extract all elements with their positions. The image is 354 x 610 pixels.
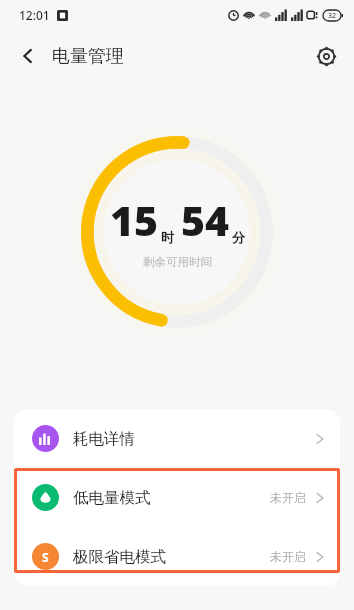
button[interactable]: Settings	[306, 36, 346, 76]
button[interactable]: 耗电详情	[14, 409, 340, 468]
staticText: 未开启	[270, 549, 306, 564]
staticText: 剩余可用时间	[143, 255, 212, 269]
staticText: S	[42, 549, 49, 565]
staticText: 54	[181, 192, 230, 248]
staticText: 分	[232, 229, 245, 245]
button[interactable]: 低电量模式	[14, 468, 340, 527]
staticText: 15	[110, 192, 159, 248]
staticText: 32	[328, 11, 337, 21]
staticText: 12:01	[19, 7, 50, 23]
staticText: 耗电详情	[73, 429, 135, 449]
staticText: 极限省电模式	[73, 547, 166, 567]
button[interactable]: Back	[8, 36, 48, 76]
staticText: 电量管理	[52, 45, 124, 68]
staticText: 时	[161, 229, 174, 245]
staticText: 未开启	[270, 490, 306, 505]
staticText: 低电量模式	[73, 488, 151, 508]
button[interactable]: S	[14, 527, 340, 586]
